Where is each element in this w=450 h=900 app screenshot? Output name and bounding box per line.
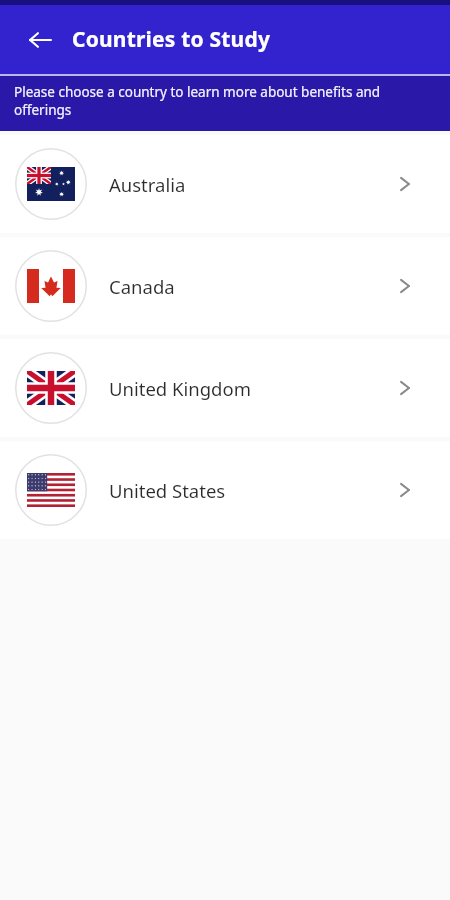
staticText: Australia xyxy=(109,172,186,197)
staticText: United States xyxy=(109,478,226,503)
button[interactable]: Australia xyxy=(0,135,450,233)
button[interactable]: Canada xyxy=(0,237,450,335)
staticText: Canada xyxy=(109,274,175,299)
button[interactable]: Back xyxy=(18,18,62,62)
staticText: Countries to Study xyxy=(72,25,271,54)
staticText: Please choose a country to learn more ab… xyxy=(14,83,440,119)
staticText: United Kingdom xyxy=(109,376,251,401)
button[interactable]: United Kingdom xyxy=(0,339,450,437)
button[interactable]: United States xyxy=(0,441,450,539)
